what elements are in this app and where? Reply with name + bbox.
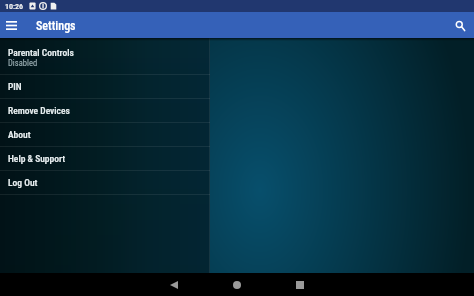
button[interactable]: About [0,123,210,146]
staticText: Parental Controls [8,47,74,58]
button[interactable]: Help & Support [0,147,210,170]
button[interactable]: Back [157,273,191,296]
button[interactable]: Parental Controls [0,38,210,74]
button[interactable]: Log Out [0,171,210,194]
staticText: Log Out [8,177,38,188]
staticText: PIN [8,81,22,92]
button[interactable]: PIN [0,75,210,98]
staticText: Settings [36,19,76,33]
button[interactable]: Remove Devices [0,99,210,122]
button[interactable]: Recent apps [283,273,317,296]
button[interactable]: Open navigation drawer [0,12,23,38]
staticText: 10:26 [5,2,24,11]
staticText: Disabled [8,58,38,68]
button[interactable]: Search [448,12,472,38]
staticText: Remove Devices [8,105,70,116]
staticText: About [8,129,31,140]
button[interactable]: Home [220,273,254,296]
staticText: Help & Support [8,153,66,164]
